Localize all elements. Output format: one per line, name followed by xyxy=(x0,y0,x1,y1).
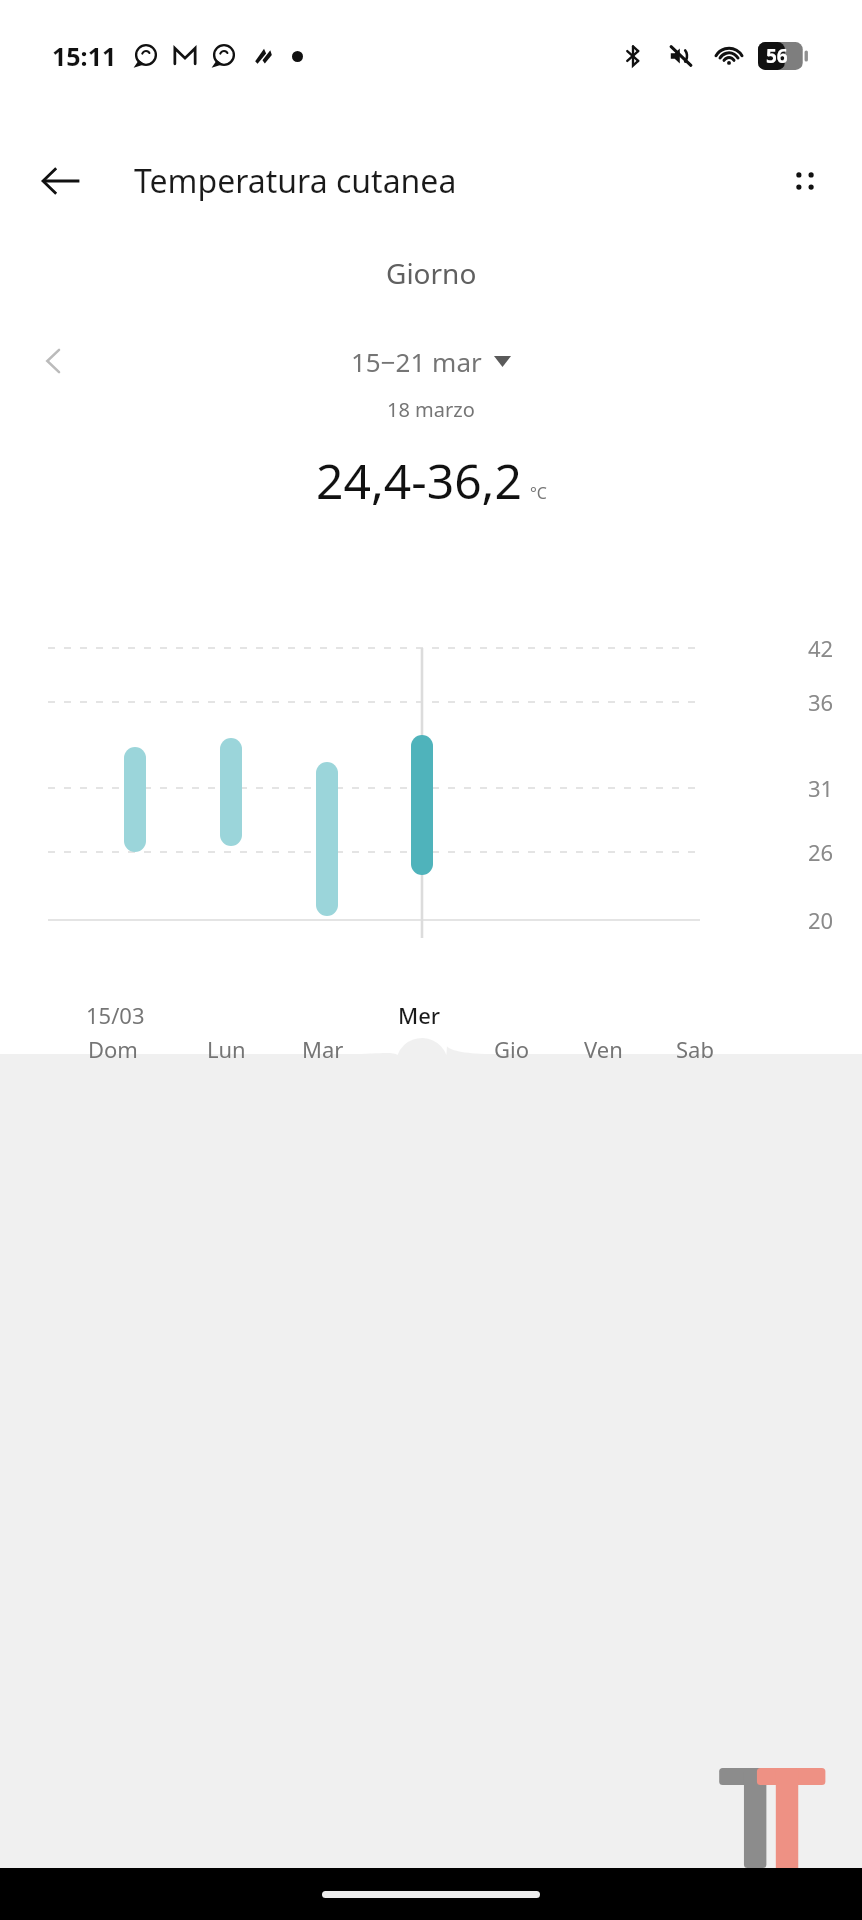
button[interactable]: Ven xyxy=(584,1034,623,1064)
staticText: 36 xyxy=(808,687,834,717)
staticText: Temperatura cutanea xyxy=(134,159,457,203)
button[interactable]: Lun xyxy=(207,1034,246,1064)
staticText: 26 xyxy=(808,837,834,867)
staticText: °C xyxy=(530,482,547,504)
button[interactable]: Settimana precedente xyxy=(26,333,82,389)
button[interactable]: Altre opzioni xyxy=(772,148,838,214)
button[interactable]: Dom xyxy=(88,1034,138,1064)
staticText: 20 xyxy=(808,905,834,935)
staticText: 56 xyxy=(766,43,788,69)
staticText: Giorno xyxy=(386,254,477,292)
button[interactable]: Indietro xyxy=(28,148,94,214)
button[interactable]: Gio xyxy=(494,1034,530,1064)
button[interactable]: Mar xyxy=(302,1034,344,1064)
button[interactable]: Sab xyxy=(676,1034,714,1064)
staticText: 15:11 xyxy=(52,39,117,73)
button[interactable]: 15−21 mar xyxy=(345,340,517,383)
staticText: 24,4-36,2 xyxy=(316,448,522,513)
staticText: 15/03 xyxy=(86,1000,145,1030)
staticText: 42 xyxy=(808,633,834,663)
button[interactable]: Giorno xyxy=(0,254,862,305)
staticText: 15−21 mar xyxy=(351,344,482,379)
staticText: 18 marzo xyxy=(387,396,475,423)
button[interactable]: Mer xyxy=(398,1000,441,1030)
staticText: 31 xyxy=(808,773,834,803)
